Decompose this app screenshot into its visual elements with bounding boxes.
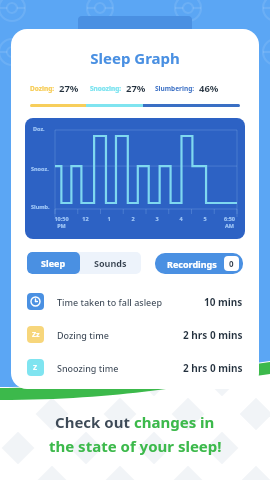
staticText: changes in <box>134 412 215 432</box>
staticText: Slumb. <box>31 203 50 210</box>
button[interactable]: Z <box>11 351 259 384</box>
staticText: the state of your sleep! <box>49 436 222 456</box>
staticText: 0 <box>229 258 234 269</box>
staticText: 2 hrs 0 mins <box>183 328 243 342</box>
staticText: Z <box>33 363 38 373</box>
button[interactable]: Recordings <box>155 253 243 274</box>
staticText: Dozing time <box>57 329 109 341</box>
button[interactable]: Tab handle <box>78 16 192 34</box>
staticText: Recordings <box>167 258 217 270</box>
staticText: 27% <box>126 82 146 95</box>
staticText: Slumbering: <box>155 84 195 93</box>
staticText: Doz. <box>33 125 45 132</box>
staticText: 4 <box>179 215 183 222</box>
staticText: Dozing: <box>30 84 55 93</box>
staticText: 5 <box>203 215 207 222</box>
staticText: 6:50 AM <box>224 215 235 229</box>
staticText: Snoozing: <box>90 84 122 93</box>
staticText: Sleep Graph <box>11 48 259 68</box>
staticText: Zz <box>32 330 40 340</box>
staticText: Time taken to fall asleep <box>57 296 163 308</box>
staticText: 46% <box>199 82 219 95</box>
staticText: Snoozing time <box>57 362 119 374</box>
staticText: 27% <box>59 82 79 95</box>
staticText: 2 hrs 0 mins <box>183 361 243 375</box>
staticText: Sleep <box>41 257 66 269</box>
staticText: 1 <box>107 215 111 222</box>
staticText: 3 <box>155 215 159 222</box>
button[interactable]: Sleep <box>27 252 80 274</box>
staticText: Check out <box>55 412 134 432</box>
staticText: Snooz. <box>31 165 49 172</box>
staticText: 2 <box>131 215 135 222</box>
button[interactable]: Time taken to fall asleep <box>11 285 259 318</box>
staticText: 10:50 PM <box>54 215 69 229</box>
staticText: Sounds <box>94 257 127 269</box>
button[interactable]: Zz <box>11 318 259 351</box>
staticText: 10 mins <box>204 295 243 309</box>
staticText: 12 <box>82 215 89 222</box>
button[interactable]: Sounds <box>80 252 141 274</box>
